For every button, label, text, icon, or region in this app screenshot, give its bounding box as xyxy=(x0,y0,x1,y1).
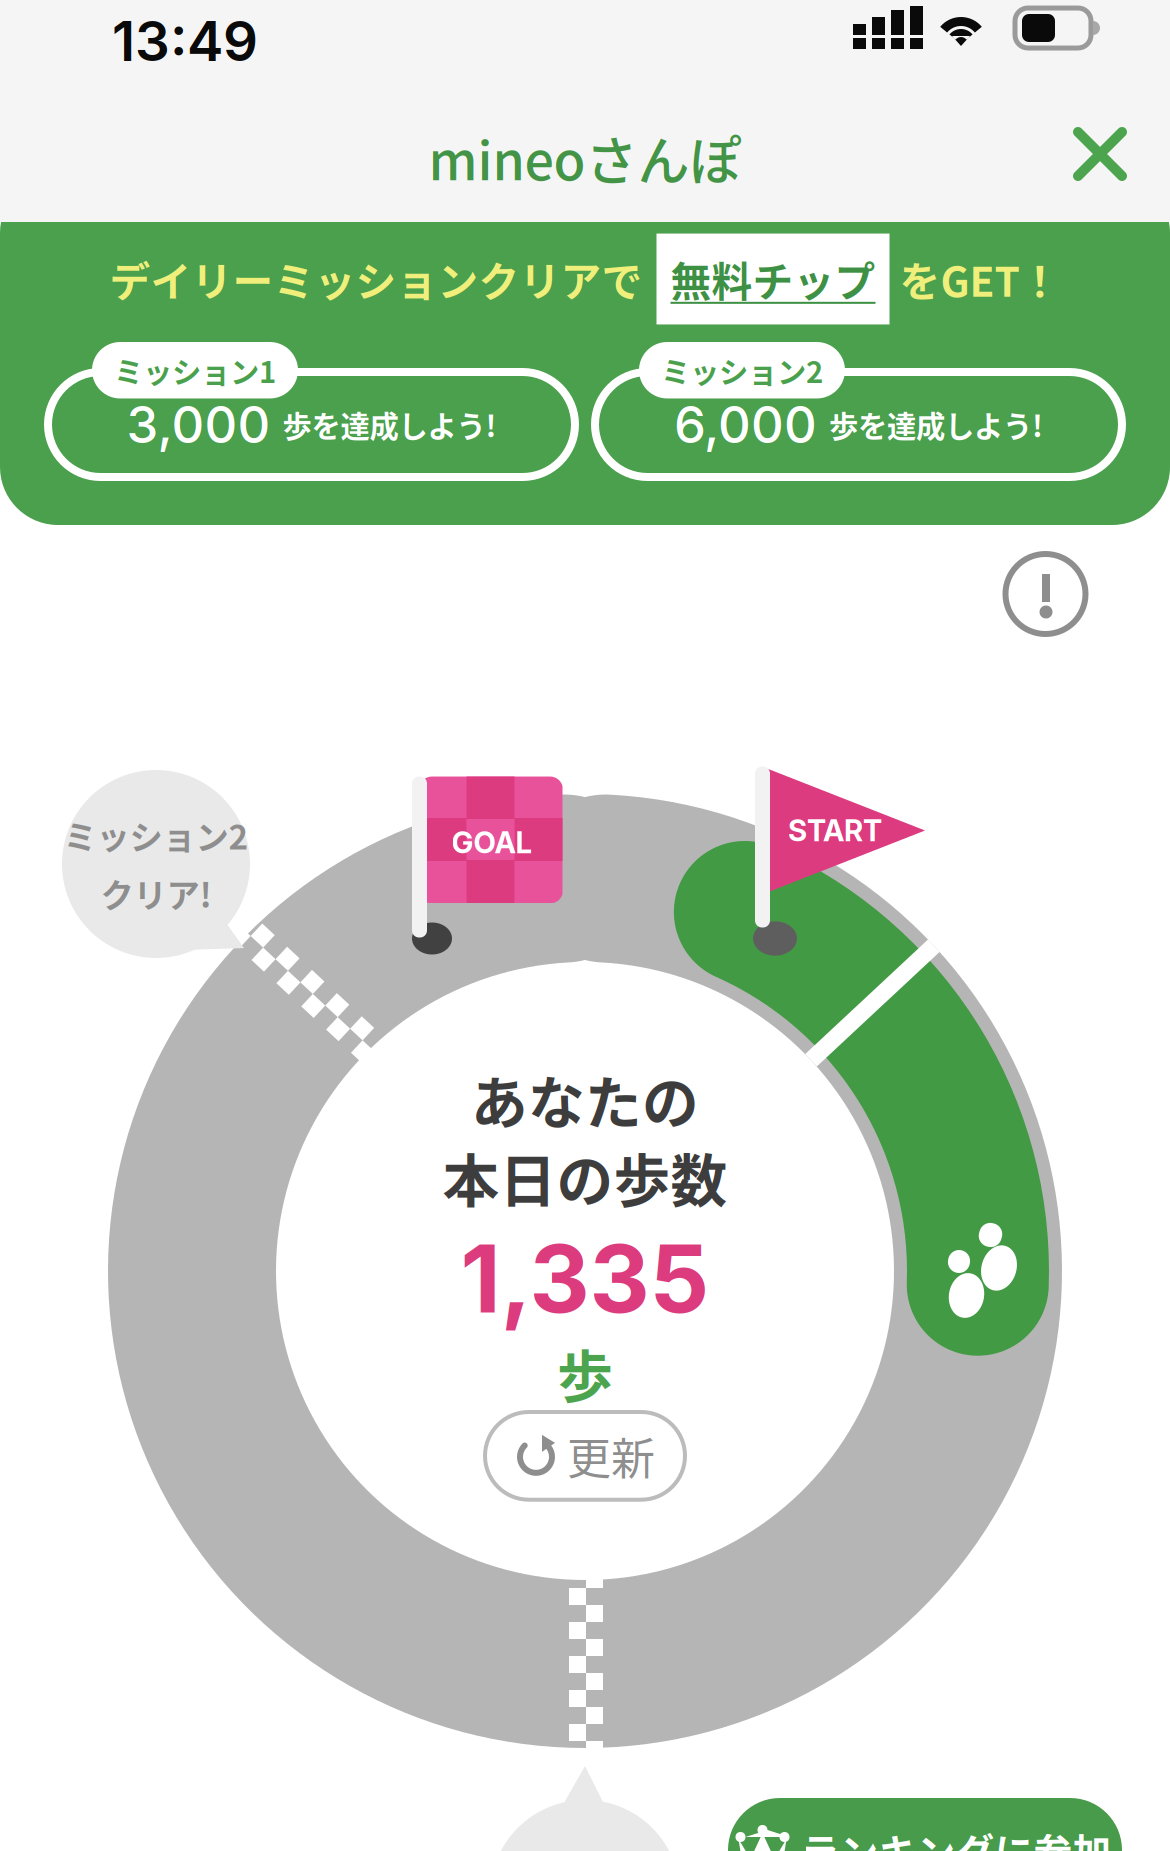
staticText: 1,335 xyxy=(460,1222,709,1335)
button[interactable]: Information xyxy=(1006,554,1086,634)
staticText: 6,000 xyxy=(674,394,817,455)
staticText: START xyxy=(788,813,882,848)
staticText: デイリーミッションクリアで xyxy=(109,250,642,308)
button[interactable]: Close xyxy=(1052,106,1148,202)
staticText: 歩 xyxy=(557,1332,613,1413)
staticText: ミッション2 xyxy=(661,349,823,391)
staticText: ランキングに参加 xyxy=(800,1822,1111,1851)
staticText: をGET！ xyxy=(899,250,1060,308)
staticText: 歩を達成しよう! xyxy=(282,403,496,446)
staticText: 無料チップ xyxy=(670,250,875,308)
staticText: あなたの xyxy=(471,1058,699,1140)
staticText: 更新 xyxy=(567,1424,655,1488)
staticText: 本日の歩数 xyxy=(442,1136,727,1218)
staticText: クリア! xyxy=(100,869,211,917)
button[interactable]: 更新 xyxy=(485,1412,685,1500)
staticText: 歩を達成しよう! xyxy=(829,403,1043,446)
button[interactable]: ランキングに参加 xyxy=(728,1798,1122,1851)
staticText: 13:49 xyxy=(112,8,258,74)
staticText: ミッション1 xyxy=(114,349,276,391)
staticText: mineoさんぽ xyxy=(428,120,741,195)
staticText: GOAL xyxy=(451,825,531,860)
staticText: 3,000 xyxy=(126,394,270,455)
staticText: ミッション2 xyxy=(63,811,248,859)
